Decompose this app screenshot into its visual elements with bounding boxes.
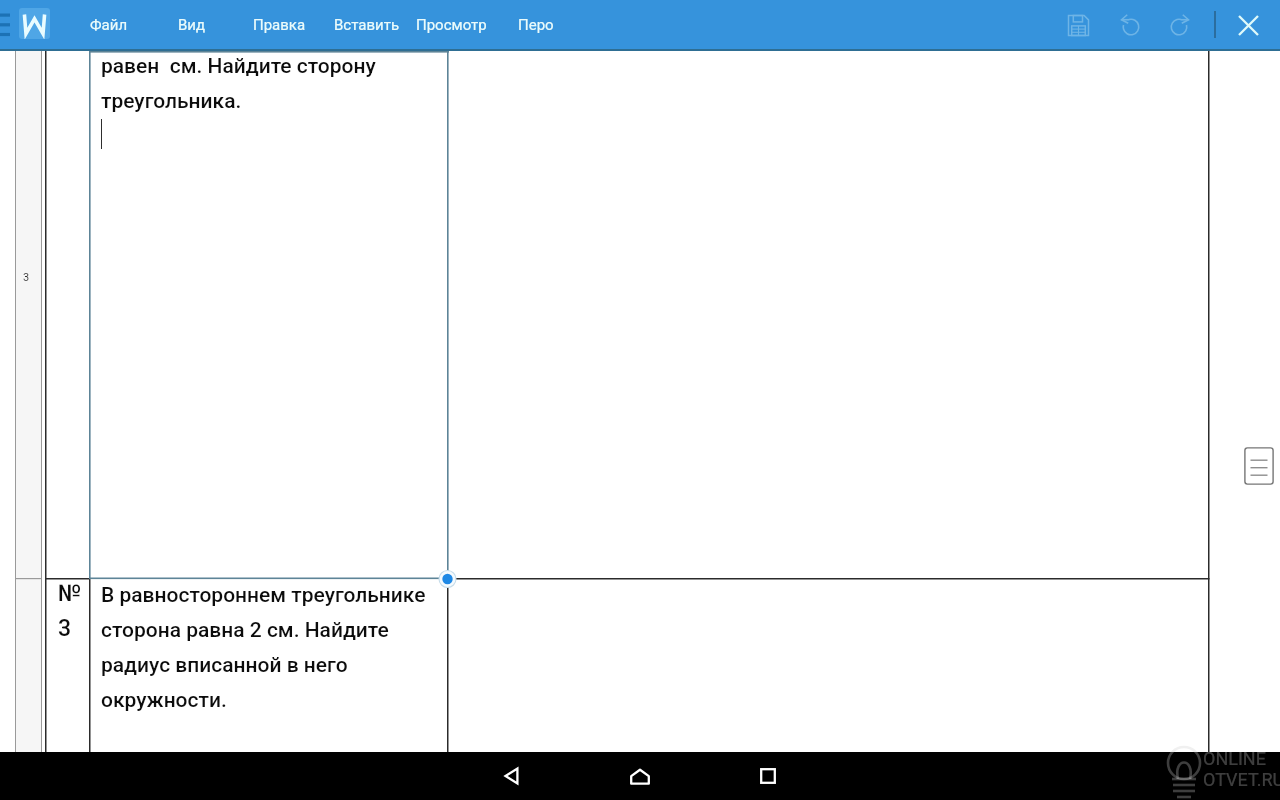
staticText: 3 [23, 271, 30, 284]
button[interactable]: Back [488, 752, 536, 800]
staticText: Файл [90, 16, 128, 34]
button[interactable]: Undo [1106, 1, 1154, 49]
staticText: Вид [178, 16, 206, 34]
button[interactable]: Close [1224, 1, 1272, 49]
staticText: ONLINE [1203, 748, 1266, 769]
button[interactable]: Просмотр [404, 0, 499, 50]
staticText: OTVET.RU [1203, 769, 1280, 790]
staticText: Вставить [334, 16, 400, 34]
button[interactable]: Redo [1155, 1, 1203, 49]
button[interactable]: Вид [166, 0, 218, 50]
staticText: радиус вписанной в него [101, 644, 348, 679]
button[interactable]: Home [616, 752, 664, 800]
staticText: Просмотр [416, 16, 487, 34]
staticText: № [58, 573, 82, 608]
staticText: треугольника. [101, 80, 242, 115]
button[interactable]: Вставить [322, 0, 412, 50]
button[interactable]: Перо [506, 0, 566, 50]
button[interactable]: Recent apps [744, 752, 792, 800]
button[interactable]: Menu [0, 8, 10, 40]
button[interactable]: Page view [1244, 447, 1274, 485]
staticText: В равностороннем треугольнике [101, 574, 426, 609]
staticText: Правка [253, 16, 306, 34]
button[interactable]: WPS Writer [19, 8, 50, 39]
staticText: равен см. Найдите сторону [101, 45, 376, 80]
button[interactable]: Файл [78, 0, 140, 50]
staticText: 3 [58, 608, 72, 643]
button[interactable]: Правка [241, 0, 318, 50]
staticText: сторона равна 2 см. Найдите [101, 609, 389, 644]
button[interactable]: Save [1054, 1, 1102, 49]
staticText: окружности. [101, 679, 227, 714]
staticText: Перо [518, 16, 554, 34]
